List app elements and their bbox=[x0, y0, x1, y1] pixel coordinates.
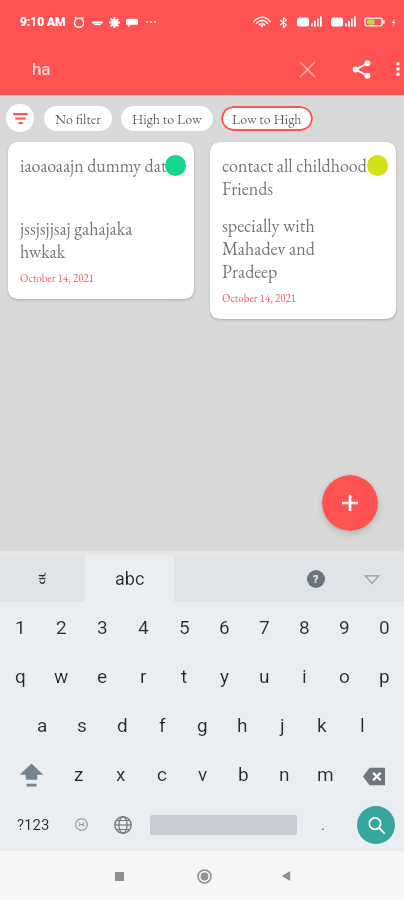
button[interactable]: 1 bbox=[0, 602, 41, 652]
staticText: y bbox=[220, 665, 229, 687]
staticText: z bbox=[74, 763, 84, 785]
button[interactable]: . bbox=[298, 798, 348, 851]
button[interactable]: k bbox=[302, 700, 342, 749]
button[interactable]: b bbox=[223, 749, 264, 798]
button[interactable]: 2 bbox=[41, 602, 82, 652]
button[interactable]: r bbox=[123, 652, 164, 700]
staticText: Friends bbox=[222, 177, 274, 200]
button[interactable] bbox=[148, 798, 298, 851]
staticText: x bbox=[116, 763, 126, 785]
button[interactable]: 6 bbox=[204, 602, 244, 652]
button[interactable]: abc bbox=[85, 555, 174, 602]
staticText: 8 bbox=[299, 616, 310, 638]
staticText: jssjsjjsaj gahajaka bbox=[20, 217, 133, 240]
staticText: i bbox=[302, 665, 307, 687]
button[interactable]: Help bbox=[298, 561, 334, 597]
staticText: 6 bbox=[219, 616, 230, 638]
button[interactable]: z bbox=[58, 749, 100, 798]
staticText: 9 bbox=[339, 616, 350, 638]
button[interactable]: p bbox=[364, 652, 404, 700]
button[interactable]: d bbox=[102, 700, 142, 749]
staticText: 7 bbox=[259, 616, 270, 638]
button[interactable]: a bbox=[22, 700, 62, 749]
button[interactable]: c bbox=[141, 749, 182, 798]
button[interactable]: n bbox=[264, 749, 305, 798]
staticText: e bbox=[97, 665, 108, 687]
staticText: s bbox=[77, 714, 87, 736]
button[interactable]: 8 bbox=[284, 602, 324, 652]
staticText: c bbox=[157, 763, 167, 785]
button[interactable]: q bbox=[0, 652, 41, 700]
button[interactable]: Low to High bbox=[221, 106, 313, 131]
button[interactable]: Filter bbox=[6, 104, 34, 132]
button[interactable]: No filter bbox=[44, 106, 112, 131]
button[interactable]: Shift bbox=[0, 749, 58, 798]
button[interactable]: Emoji bbox=[66, 798, 97, 851]
staticText: 4 bbox=[138, 616, 149, 638]
button[interactable]: x bbox=[100, 749, 141, 798]
button[interactable]: 7 bbox=[244, 602, 284, 652]
staticText: r bbox=[140, 665, 147, 687]
button[interactable]: e bbox=[82, 652, 123, 700]
button[interactable]: High to Low bbox=[121, 106, 213, 131]
button[interactable]: f bbox=[142, 700, 182, 749]
button[interactable]: 0 bbox=[364, 602, 404, 652]
button[interactable]: u bbox=[244, 652, 284, 700]
button[interactable]: v bbox=[182, 749, 223, 798]
staticText: Low to High bbox=[232, 110, 302, 128]
staticText: t bbox=[181, 665, 188, 687]
button[interactable]: h bbox=[222, 700, 262, 749]
button[interactable]: s bbox=[62, 700, 102, 749]
staticText: m bbox=[317, 763, 334, 785]
button[interactable]: Change keyboard language bbox=[97, 798, 148, 851]
button[interactable]: i bbox=[284, 652, 324, 700]
button[interactable]: y bbox=[204, 652, 244, 700]
button[interactable]: ?123 bbox=[0, 798, 66, 851]
button[interactable]: o bbox=[324, 652, 364, 700]
button[interactable]: m bbox=[305, 749, 346, 798]
staticText: u bbox=[259, 665, 270, 687]
button[interactable]: Hide keyboard bbox=[354, 561, 390, 597]
button[interactable]: g bbox=[182, 700, 222, 749]
staticText: 2 bbox=[56, 616, 67, 638]
staticText: h bbox=[237, 714, 248, 736]
staticText: 9:10 AM bbox=[20, 15, 66, 29]
button[interactable]: ಕ bbox=[0, 555, 85, 602]
button[interactable]: 4 bbox=[123, 602, 164, 652]
button[interactable]: t bbox=[164, 652, 204, 700]
staticText: specially with bbox=[222, 214, 315, 237]
button[interactable]: 5 bbox=[164, 602, 204, 652]
button[interactable]: Clear text bbox=[285, 47, 329, 91]
staticText: w bbox=[54, 665, 69, 687]
staticText: ? bbox=[313, 573, 319, 586]
button[interactable]: contact all childhood bbox=[210, 142, 396, 319]
staticText: High to Low bbox=[132, 110, 202, 128]
button[interactable]: Add note bbox=[322, 475, 378, 531]
button[interactable]: Back bbox=[264, 854, 308, 898]
staticText: g bbox=[197, 714, 208, 736]
button[interactable]: 3 bbox=[82, 602, 123, 652]
button[interactable]: j bbox=[262, 700, 302, 749]
staticText: k bbox=[317, 714, 327, 736]
staticText: a bbox=[37, 714, 48, 736]
staticText: ?123 bbox=[17, 816, 50, 834]
staticText: q bbox=[15, 665, 26, 687]
button[interactable]: Recent apps bbox=[97, 854, 141, 898]
button[interactable]: Home bbox=[182, 854, 226, 898]
button[interactable]: More options bbox=[383, 54, 404, 84]
staticText: abc bbox=[115, 568, 145, 589]
staticText: Pradeep bbox=[222, 260, 278, 283]
button[interactable]: w bbox=[41, 652, 82, 700]
button[interactable]: iaoaoaajn dummy data bbox=[8, 142, 194, 299]
staticText: p bbox=[379, 665, 390, 687]
staticText: v bbox=[198, 763, 208, 785]
button[interactable]: Share bbox=[339, 47, 383, 91]
staticText: ha bbox=[32, 59, 51, 79]
button[interactable]: Search bbox=[348, 798, 404, 851]
button[interactable]: Backspace bbox=[346, 749, 404, 798]
button[interactable]: 9 bbox=[324, 602, 364, 652]
staticText: contact all childhood bbox=[222, 154, 367, 177]
button[interactable]: l bbox=[342, 700, 382, 749]
staticText: l bbox=[360, 714, 365, 736]
staticText: n bbox=[279, 763, 290, 785]
